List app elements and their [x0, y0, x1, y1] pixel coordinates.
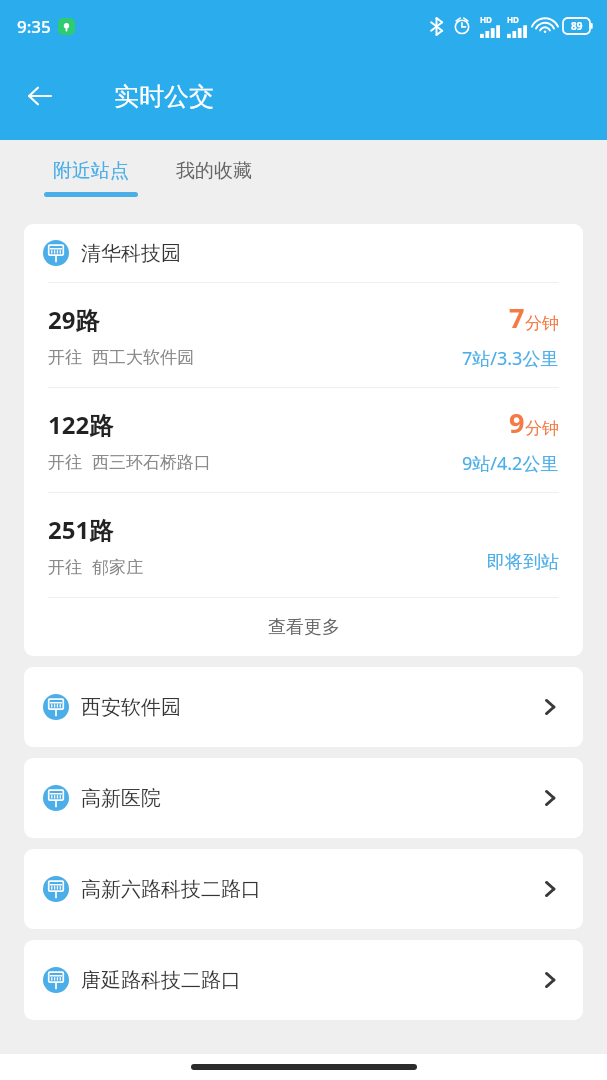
staticText: 郁家庄 [92, 557, 143, 578]
staticText: 开往 [48, 557, 82, 578]
staticText: 7 [509, 299, 525, 336]
button[interactable]: 我的收藏 [168, 159, 260, 183]
button[interactable]: 高新六路科技二路口 [24, 849, 583, 929]
staticText: 分钟 [525, 418, 559, 439]
staticText: 251路 [48, 513, 114, 546]
staticText: 高新六路科技二路口 [81, 877, 539, 902]
staticText: 开往 [48, 452, 82, 473]
staticText: 西工大软件园 [92, 347, 194, 368]
staticText: 西三环石桥路口 [92, 452, 211, 473]
staticText: 即将到站 [487, 551, 559, 574]
button[interactable]: Back [16, 72, 64, 120]
staticText: 西安软件园 [81, 695, 539, 720]
button[interactable]: 251路 [24, 493, 583, 597]
button[interactable]: 唐延路科技二路口 [24, 940, 583, 1020]
staticText: 唐延路科技二路口 [81, 968, 539, 993]
staticText: 高新医院 [81, 786, 539, 811]
staticText: 开往 [48, 347, 82, 368]
staticText: 89 [571, 19, 583, 33]
staticText: 9:35 [17, 15, 51, 38]
button[interactable]: 西安软件园 [24, 667, 583, 747]
button[interactable]: 附近站点 [36, 159, 146, 197]
staticText: 附近站点 [53, 159, 129, 183]
button[interactable]: 29路 [24, 283, 583, 387]
staticText: 实时公交 [114, 81, 214, 112]
staticText: 9站/4.2公里 [462, 451, 559, 476]
staticText: HD [480, 14, 492, 25]
staticText: 我的收藏 [176, 159, 252, 183]
staticText: HD [507, 14, 519, 25]
staticText: 清华科技园 [81, 241, 181, 266]
staticText: 29路 [48, 303, 100, 336]
staticText: 分钟 [525, 313, 559, 334]
button[interactable]: 查看更多 [24, 598, 583, 656]
staticText: 9 [509, 404, 525, 441]
staticText: 查看更多 [268, 616, 340, 639]
button[interactable]: 122路 [24, 388, 583, 492]
button[interactable]: 高新医院 [24, 758, 583, 838]
staticText: 7站/3.3公里 [462, 346, 559, 371]
staticText: 122路 [48, 408, 114, 441]
button[interactable]: 清华科技园 [24, 224, 583, 282]
